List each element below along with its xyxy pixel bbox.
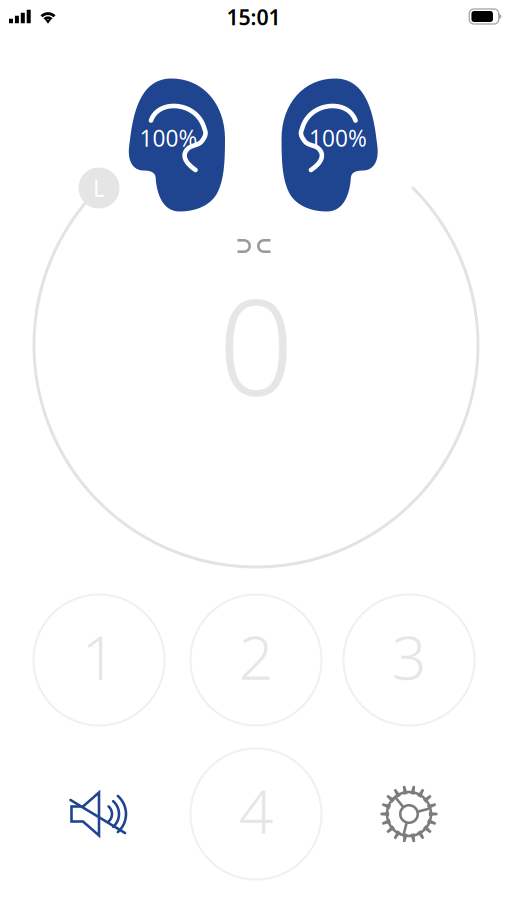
staticText: 3 <box>391 615 426 697</box>
staticText: 4 <box>238 769 273 851</box>
staticText: 100% <box>309 123 367 153</box>
button[interactable]: Settings <box>354 759 464 869</box>
button[interactable]: 2 <box>190 594 321 725</box>
staticText: L <box>93 173 105 203</box>
button[interactable]: Right hearing aid 100 percent <box>278 77 382 216</box>
button[interactable]: 1 <box>33 594 164 725</box>
button[interactable]: 3 <box>343 594 474 725</box>
staticText: 15:01 <box>226 3 280 31</box>
button[interactable]: Left hearing aid 100 percent <box>124 77 228 216</box>
staticText: 0 <box>218 255 294 433</box>
button[interactable]: Mute <box>44 759 154 869</box>
staticText: 1 <box>81 615 116 697</box>
button[interactable]: 4 <box>190 748 321 879</box>
staticText: 100% <box>139 123 197 153</box>
staticText: 2 <box>238 615 273 697</box>
